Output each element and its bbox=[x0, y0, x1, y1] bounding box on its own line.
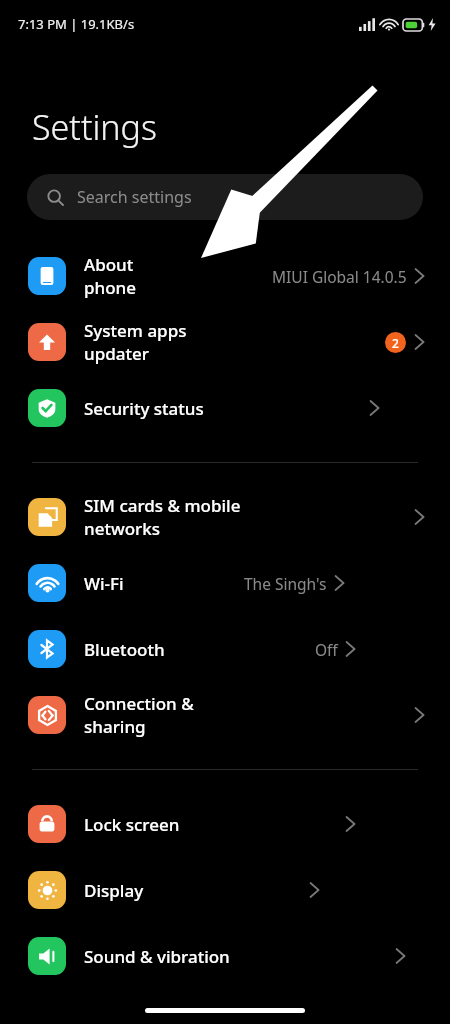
button[interactable]: System apps updater bbox=[0, 309, 450, 375]
staticText: Bluetooth bbox=[84, 638, 165, 661]
button[interactable]: Display bbox=[0, 857, 450, 923]
button[interactable]: Connection & sharing bbox=[0, 682, 450, 748]
staticText: Settings bbox=[32, 104, 157, 150]
staticText: Off bbox=[315, 639, 338, 660]
button[interactable]: Wi-Fi bbox=[0, 550, 450, 616]
staticText: 7:13 PM | 19.1KB/s bbox=[18, 15, 135, 33]
staticText: Search settings bbox=[77, 186, 192, 208]
button[interactable]: Sound & vibration bbox=[0, 923, 450, 989]
button[interactable]: About phone bbox=[0, 243, 450, 309]
staticText: The Singh's bbox=[244, 573, 327, 594]
staticText: Wi-Fi bbox=[84, 572, 124, 595]
button[interactable]: Bluetooth bbox=[0, 616, 450, 682]
button[interactable]: Search settings bbox=[27, 174, 423, 220]
staticText: Lock screen bbox=[84, 813, 180, 836]
button[interactable]: Security status bbox=[0, 375, 450, 441]
staticText: Display bbox=[84, 879, 144, 902]
staticText: Sound & vibration bbox=[84, 945, 230, 968]
staticText: SIM cards & mobile networks bbox=[84, 494, 249, 540]
button[interactable]: Lock screen bbox=[0, 791, 450, 857]
staticText: Connection & sharing bbox=[84, 692, 249, 738]
button[interactable]: SIM cards & mobile networks bbox=[0, 484, 450, 550]
staticText: MIUI Global 14.0.5 bbox=[272, 266, 407, 287]
staticText: 2 bbox=[392, 335, 399, 351]
staticText: System apps updater bbox=[84, 319, 234, 365]
staticText: About phone bbox=[84, 253, 178, 299]
staticText: Security status bbox=[84, 397, 204, 420]
